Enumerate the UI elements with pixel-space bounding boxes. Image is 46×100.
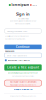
staticText: Trouble signing in? (13, 88, 32, 90)
staticText: name@company.com (7, 29, 27, 33)
staticText: Too many sign-in attempts (9, 80, 36, 83)
staticText: Remember this device (8, 59, 30, 62)
staticText: Continue (16, 45, 30, 49)
staticText: workspace to sign in. (15, 22, 31, 25)
staticText: dolor (32, 3, 37, 7)
button[interactable]: Create a free account (4, 64, 42, 71)
staticText: By continuing you accept our Terms of (8, 72, 38, 74)
staticText: Password (5, 50, 14, 52)
staticText: loremipsum (11, 3, 29, 7)
staticText: Use the email address linked to your (9, 19, 36, 22)
staticText: outside your organisation. (5, 38, 25, 40)
staticText: Privacy · Terms · © 2024 Lorem Inc. (10, 95, 36, 97)
button[interactable]: Remember this device (5, 59, 42, 62)
staticText: We will never share this address (5, 35, 29, 37)
button[interactable]: Continue (4, 45, 42, 49)
staticText: to continue (17, 17, 28, 20)
staticText: Service and the Privacy Policy. (12, 75, 34, 77)
staticText: Create a free account (7, 66, 39, 69)
button[interactable]: Trouble signing in? (0, 88, 46, 90)
staticText: Enter your password (6, 54, 26, 57)
staticText: Please wait 15 minutes, then retry. (10, 84, 36, 86)
staticText: Sign in (16, 11, 30, 17)
